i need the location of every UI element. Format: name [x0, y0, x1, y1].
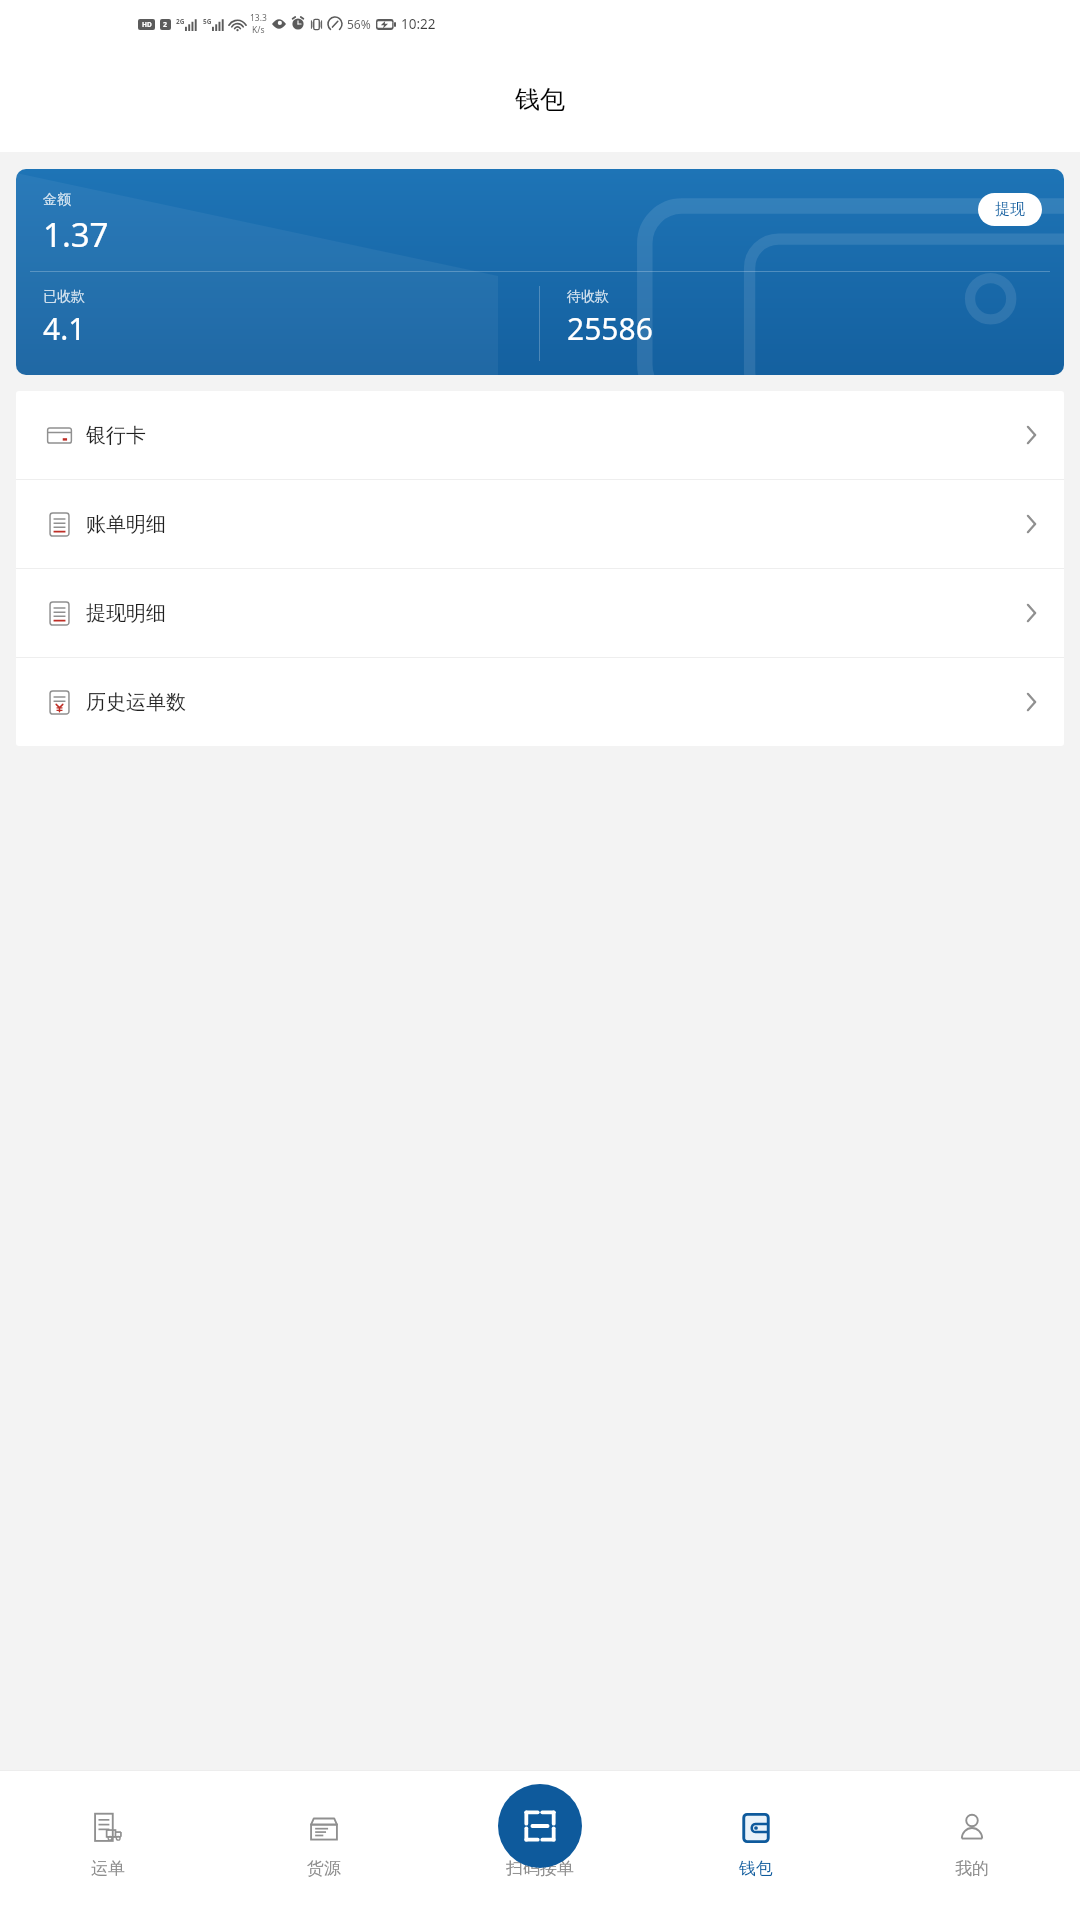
staticText: 25586 [567, 308, 653, 349]
staticText: 13.3 [250, 12, 267, 24]
staticText: 钱包 [739, 1858, 773, 1879]
staticText: 提现 [995, 200, 1025, 219]
button[interactable]: 扫码接单 [498, 1784, 582, 1868]
staticText: 运单 [91, 1858, 125, 1879]
staticText: 5G [203, 17, 212, 26]
button[interactable]: 账单明细 [16, 480, 1064, 568]
button[interactable]: 扫码接单 [432, 1770, 648, 1920]
staticText: 历史运单数 [86, 690, 186, 715]
staticText: 2 [163, 20, 168, 30]
staticText: 待收款 [567, 288, 609, 306]
staticText: 银行卡 [86, 423, 146, 448]
button[interactable]: 我的 [864, 1770, 1080, 1920]
staticText: 4.1 [43, 308, 86, 349]
staticText: 2G [176, 17, 185, 26]
staticText: 56% [347, 16, 371, 32]
button[interactable]: 银行卡 [16, 391, 1064, 479]
staticText: HD [142, 20, 152, 29]
staticText: 我的 [955, 1858, 989, 1879]
button[interactable]: 金额 [16, 169, 1064, 375]
staticText: 10:22 [401, 15, 436, 33]
staticText: 金额 [43, 191, 71, 209]
button[interactable]: 提现 [978, 193, 1042, 226]
staticText: K/s [252, 24, 265, 36]
staticText: 扫码接单 [506, 1858, 574, 1879]
button[interactable]: 运单 [0, 1770, 216, 1920]
staticText: 货源 [307, 1858, 341, 1879]
staticText: 1.37 [43, 212, 109, 257]
staticText: 提现明细 [86, 601, 166, 626]
staticText: 钱包 [515, 84, 565, 115]
staticText: 账单明细 [86, 512, 166, 537]
button[interactable]: 货源 [216, 1770, 432, 1920]
button[interactable]: 历史运单数 [16, 658, 1064, 746]
staticText: 已收款 [43, 288, 85, 306]
button[interactable]: 钱包 [648, 1770, 864, 1920]
button[interactable]: 提现明细 [16, 569, 1064, 657]
